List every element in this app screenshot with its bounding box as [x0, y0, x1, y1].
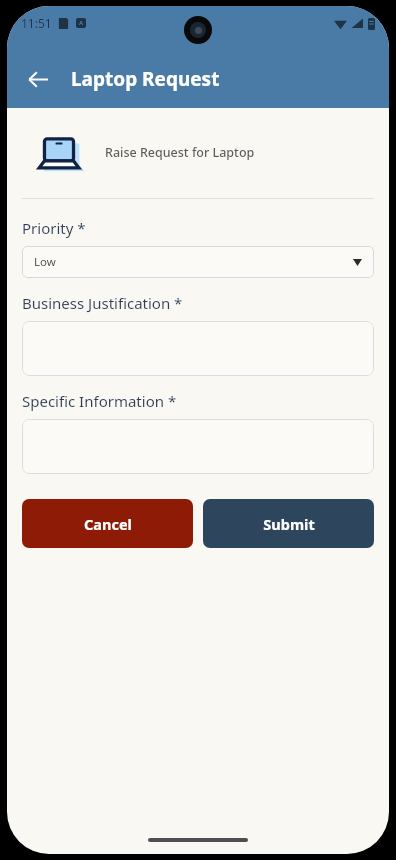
staticText: 11:51 [21, 15, 52, 31]
staticText: Low [34, 254, 56, 270]
staticText: Business Justification * [22, 293, 183, 313]
button[interactable]: Low [22, 246, 374, 278]
staticText: Laptop Request [71, 66, 220, 92]
button[interactable] [22, 321, 374, 376]
button[interactable] [22, 419, 374, 474]
staticText: Cancel [84, 514, 132, 534]
button[interactable]: Submit [203, 499, 374, 548]
staticText: Priority * [22, 218, 86, 238]
button[interactable]: Back [17, 58, 59, 100]
staticText: A [79, 19, 84, 27]
staticText: Raise Request for Laptop [105, 144, 255, 161]
staticText: Submit [263, 514, 315, 534]
button[interactable]: Cancel [22, 499, 193, 548]
staticText: Specific Information * [22, 391, 177, 411]
